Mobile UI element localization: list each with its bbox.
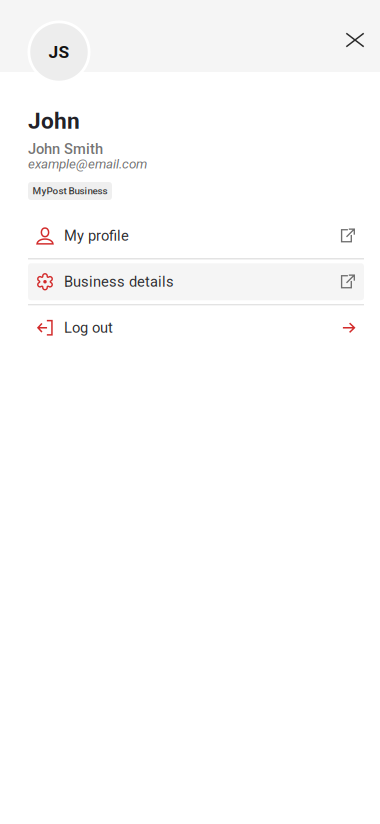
staticText: JS [48, 42, 69, 62]
staticText: John Smith [28, 140, 103, 158]
button[interactable]: My profile [28, 213, 364, 258]
staticText: John [28, 108, 80, 134]
staticText: MyPost Business [32, 185, 107, 197]
staticText: Log out [64, 319, 113, 336]
staticText: My profile [64, 227, 129, 244]
staticText: Business details [64, 273, 174, 290]
staticText: example@email.com [28, 156, 147, 172]
button[interactable]: Business details [28, 259, 364, 304]
button[interactable]: Close [333, 18, 377, 62]
button[interactable]: Log out [28, 305, 364, 350]
